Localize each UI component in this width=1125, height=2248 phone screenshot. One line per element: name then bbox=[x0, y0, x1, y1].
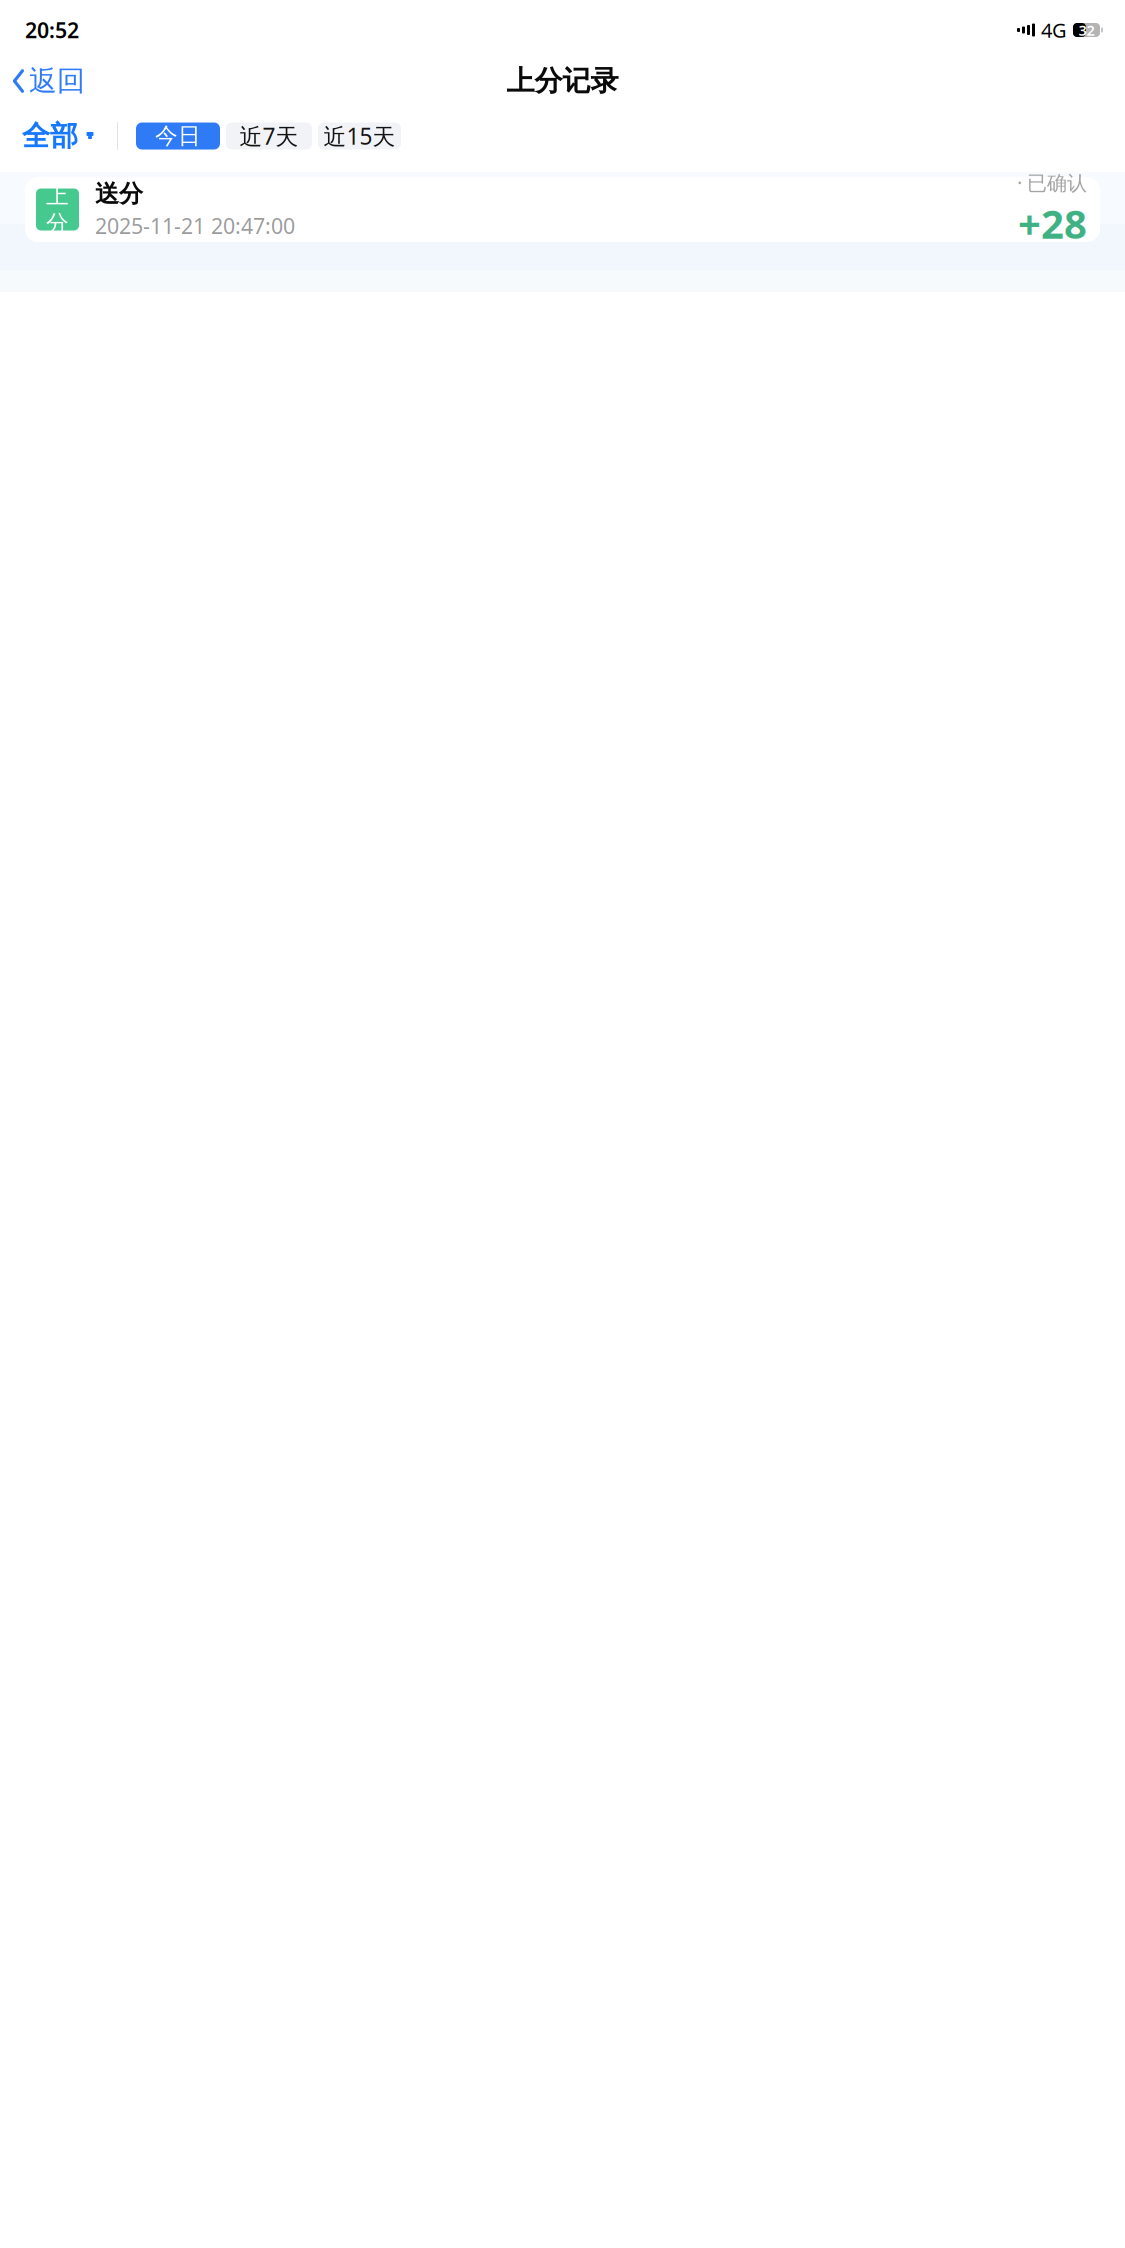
button[interactable]: 近15天 bbox=[318, 122, 401, 149]
staticText: 送分 bbox=[95, 179, 143, 209]
staticText: +28 bbox=[1018, 197, 1087, 250]
button[interactable]: 近7天 bbox=[226, 122, 312, 149]
staticText: 全部 bbox=[22, 119, 78, 153]
button[interactable]: 上分 bbox=[0, 177, 1125, 242]
staticText: 32 bbox=[1078, 20, 1094, 40]
staticText: 今日 bbox=[155, 122, 201, 150]
staticText: 2025-11-21 20:47:00 bbox=[95, 212, 295, 240]
button[interactable]: 今日 bbox=[136, 122, 220, 149]
button[interactable]: 返回 bbox=[4, 56, 93, 106]
staticText: 近15天 bbox=[323, 121, 395, 151]
staticText: 上分 bbox=[46, 182, 69, 237]
button[interactable]: 全部 bbox=[22, 113, 95, 159]
staticText: 近7天 bbox=[239, 121, 298, 151]
staticText: 4G bbox=[1041, 17, 1067, 43]
staticText: 返回 bbox=[29, 64, 85, 98]
staticText: 上分记录 bbox=[506, 64, 618, 98]
staticText: 20:52 bbox=[25, 16, 79, 44]
staticText: · 已确认 bbox=[1017, 169, 1087, 196]
